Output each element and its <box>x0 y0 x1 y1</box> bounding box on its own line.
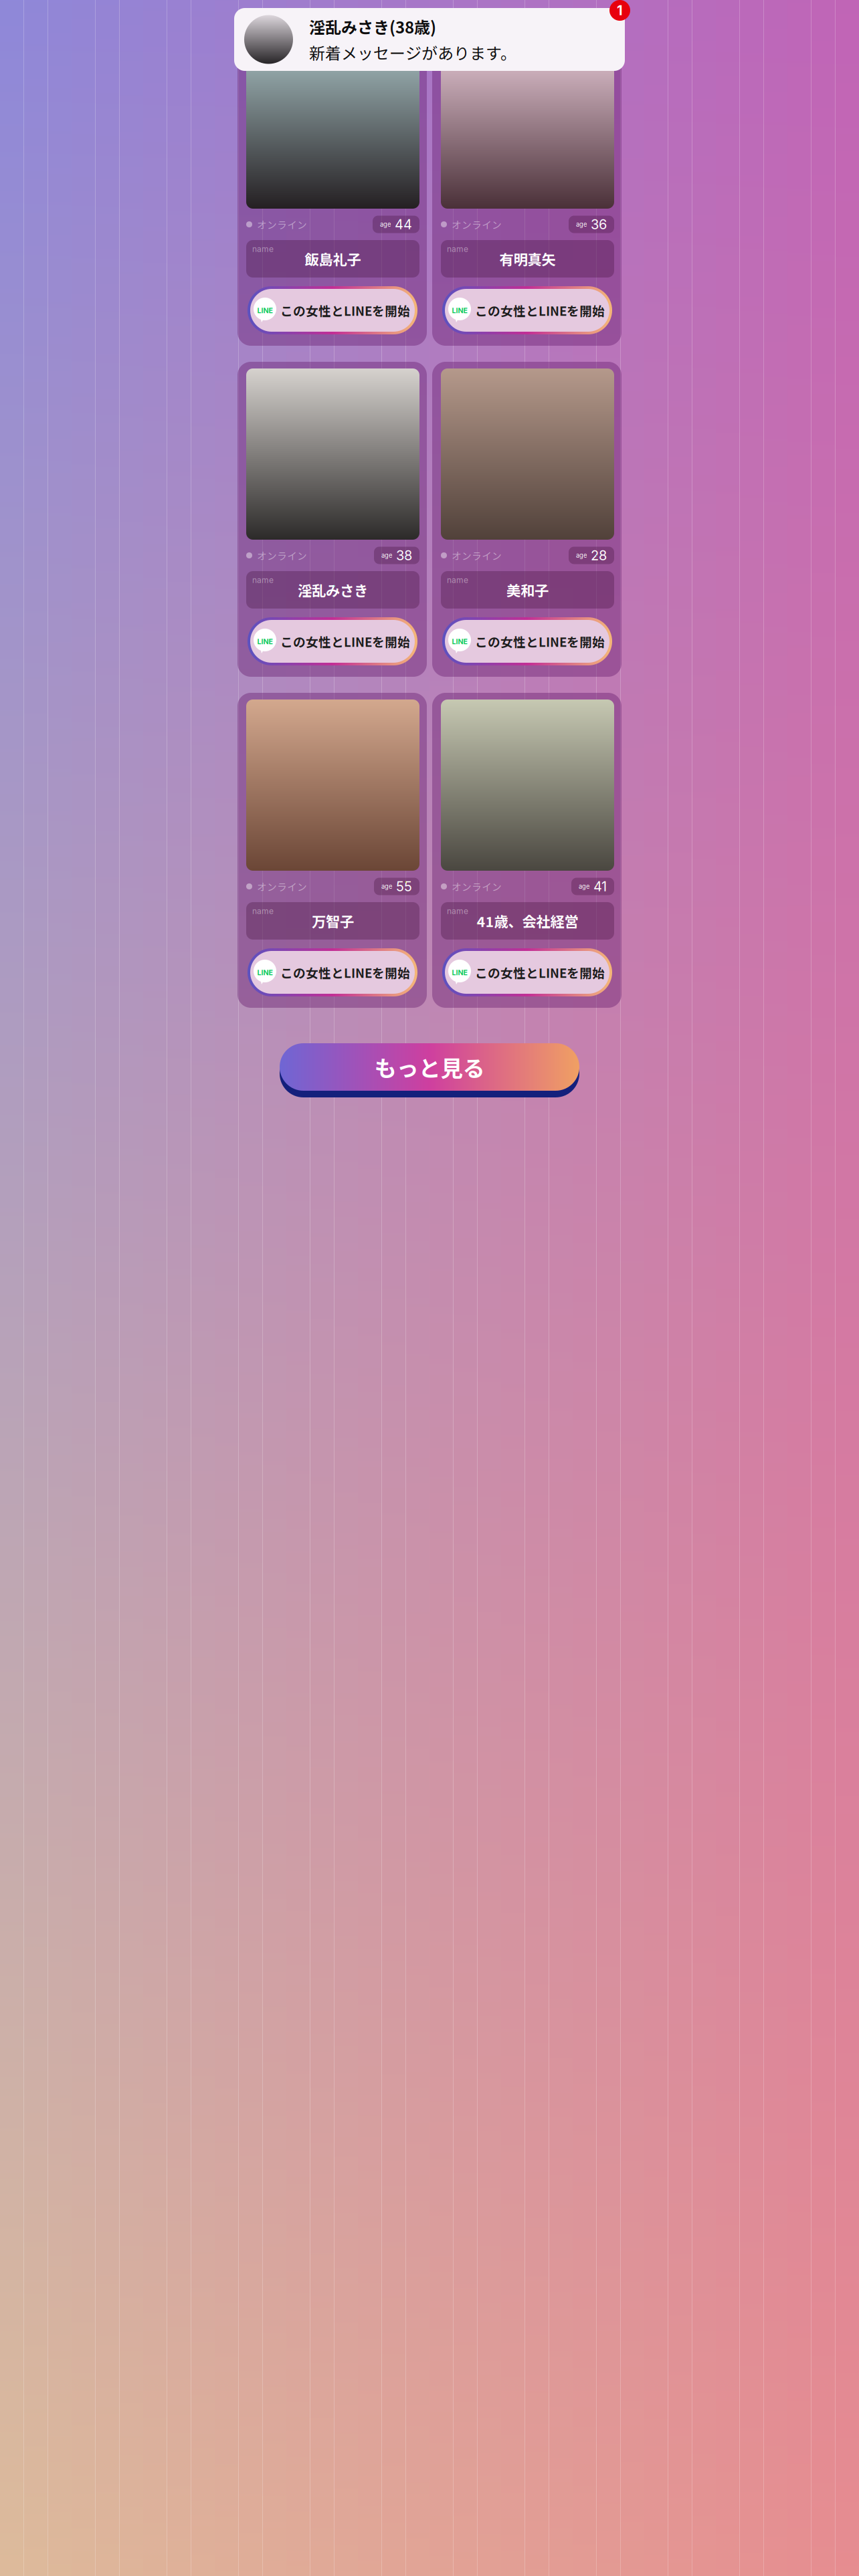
staticText: 41歳、会社経営 <box>477 911 578 931</box>
staticText: オンライン <box>257 879 307 894</box>
staticText: この女性とLINEを開始 <box>280 301 410 319</box>
staticText: 有明真矢 <box>499 249 556 269</box>
staticText: LINE <box>257 306 273 315</box>
button[interactable]: もっと見る <box>280 1040 579 1094</box>
staticText: オンライン <box>452 548 502 562</box>
button[interactable]: オンライン <box>432 362 622 677</box>
staticText: age <box>579 883 589 890</box>
staticText: 44 <box>395 216 412 232</box>
staticText: name <box>252 575 274 585</box>
staticText: オンライン <box>257 217 307 231</box>
staticText: この女性とLINEを開始 <box>280 632 410 650</box>
staticText: LINE <box>452 306 467 315</box>
staticText: 新着メッセージがあります。 <box>309 41 516 64</box>
button[interactable]: オンライン <box>237 362 427 677</box>
staticText: age <box>381 552 392 559</box>
staticText: name <box>252 906 274 916</box>
staticText: LINE <box>257 968 273 977</box>
staticText: オンライン <box>452 879 502 894</box>
button[interactable]: オンライン <box>432 31 622 346</box>
staticText: 淫乱みさき(38歳) <box>309 15 436 38</box>
staticText: もっと見る <box>374 1051 485 1083</box>
staticText: 万智子 <box>312 911 354 931</box>
staticText: age <box>380 221 391 228</box>
staticText: name <box>447 906 468 916</box>
staticText: 淫乱みさき <box>298 580 368 600</box>
staticText: name <box>447 244 468 254</box>
staticText: age <box>381 883 392 890</box>
staticText: name <box>447 575 468 585</box>
staticText: この女性とLINEを開始 <box>280 963 410 981</box>
staticText: 38 <box>396 547 412 563</box>
staticText: LINE <box>452 637 467 646</box>
staticText: 41 <box>593 878 607 895</box>
staticText: この女性とLINEを開始 <box>475 632 605 650</box>
staticText: 28 <box>591 547 607 563</box>
staticText: name <box>252 244 274 254</box>
button[interactable]: オンライン <box>237 693 427 1008</box>
staticText: age <box>576 552 587 559</box>
staticText: 36 <box>591 216 607 232</box>
staticText: 55 <box>396 878 412 895</box>
staticText: 飯島礼子 <box>305 249 361 269</box>
staticText: 美和子 <box>506 580 549 600</box>
staticText: LINE <box>452 968 467 977</box>
button[interactable]: オンライン <box>237 31 427 346</box>
button[interactable]: オンライン <box>432 693 622 1008</box>
button[interactable]: 淫乱みさき(38歳) <box>234 8 625 71</box>
staticText: オンライン <box>452 217 502 231</box>
staticText: age <box>576 221 587 228</box>
staticText: この女性とLINEを開始 <box>475 963 605 981</box>
staticText: オンライン <box>257 548 307 562</box>
staticText: LINE <box>257 637 273 646</box>
staticText: この女性とLINEを開始 <box>475 301 605 319</box>
staticText: 1 <box>617 2 623 18</box>
